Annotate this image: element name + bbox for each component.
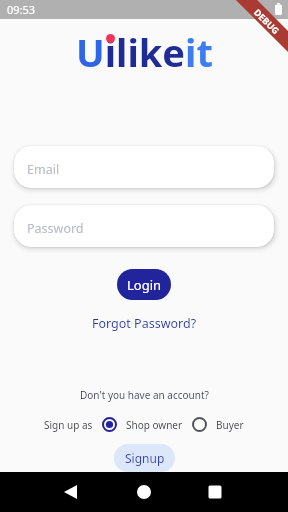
staticText: Sign up as — [44, 418, 93, 432]
staticText: 09:53 — [7, 2, 36, 17]
button[interactable]: Email — [14, 146, 274, 188]
staticText: Login — [127, 276, 162, 294]
button[interactable]: Signup — [114, 444, 175, 472]
staticText: DEBUG — [252, 6, 282, 36]
staticText: Forgot Password? — [92, 315, 197, 332]
staticText: Shop owner — [126, 418, 183, 432]
staticText: Buyer — [216, 418, 244, 432]
button[interactable] — [96, 472, 192, 512]
button[interactable] — [0, 472, 96, 512]
button[interactable]: Login — [117, 269, 171, 300]
button[interactable] — [192, 417, 207, 432]
button[interactable] — [192, 472, 288, 512]
staticText: Password — [27, 220, 84, 237]
button[interactable]: Password — [14, 205, 274, 247]
staticText: Don't you have an account? — [80, 388, 209, 402]
button[interactable]: Forgot Password? — [92, 315, 197, 332]
staticText: Uilikeit — [76, 26, 213, 78]
staticText: Signup — [125, 450, 165, 466]
staticText: Email — [27, 161, 60, 178]
button[interactable] — [102, 417, 117, 432]
